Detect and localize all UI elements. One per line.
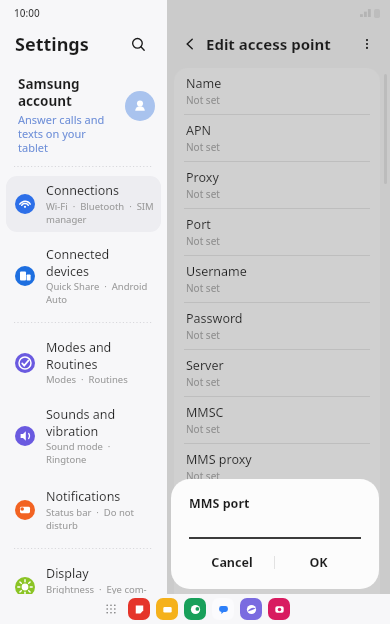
- staticText: Not set: [186, 375, 220, 389]
- button[interactable]: MMS proxy: [174, 444, 380, 490]
- button[interactable]: Cancel: [189, 548, 274, 577]
- staticText: Server: [186, 357, 224, 374]
- button[interactable]: Display: [6, 559, 161, 615]
- staticText: Sounds and vibration: [46, 406, 116, 439]
- staticText: Not set: [186, 93, 220, 107]
- button[interactable]: Server: [174, 350, 380, 396]
- button[interactable]: Username: [174, 256, 380, 302]
- button[interactable]: OK: [275, 548, 361, 577]
- button[interactable]: Proxy: [174, 162, 380, 208]
- staticText: MMSC: [186, 404, 224, 421]
- staticText: Username: [186, 263, 247, 280]
- button[interactable]: Camera: [268, 598, 290, 620]
- button[interactable]: Notifications: [6, 482, 161, 538]
- staticText: 10:00: [14, 6, 40, 20]
- staticText: MMS proxy: [186, 451, 252, 468]
- staticText: Not set: [186, 234, 220, 248]
- button[interactable]: MMSC: [174, 397, 380, 443]
- staticText: Proxy: [186, 169, 219, 186]
- button[interactable]: Phone: [184, 598, 206, 620]
- staticText: Samsung account: [18, 75, 80, 110]
- staticText: Settings: [15, 32, 89, 57]
- button[interactable]: MMS port: [174, 491, 380, 537]
- staticText: Answer calls and texts on your tablet: [18, 112, 105, 155]
- staticText: Not set: [186, 328, 220, 342]
- staticText: Modes and Routines: [46, 339, 112, 372]
- staticText: Modes · Routines: [46, 373, 128, 386]
- staticText: Port: [186, 216, 211, 233]
- button[interactable]: Samsung account: [0, 75, 167, 155]
- button[interactable]: Files: [156, 598, 178, 620]
- button[interactable]: Apps: [100, 598, 122, 620]
- staticText: Not set: [186, 469, 220, 483]
- staticText: Not set: [186, 281, 220, 295]
- staticText: Status bar · Do not disturb: [46, 506, 135, 532]
- staticText: Not set: [186, 140, 220, 154]
- staticText: Password: [186, 310, 243, 327]
- button[interactable]: APN: [174, 115, 380, 161]
- staticText: APN: [186, 122, 212, 139]
- staticText: Edit access point: [206, 34, 331, 54]
- button[interactable]: Messages: [212, 598, 234, 620]
- staticText: Notifications: [46, 488, 121, 505]
- button[interactable]: Internet: [240, 598, 262, 620]
- button[interactable]: Modes and Routines: [6, 333, 161, 392]
- staticText: Name: [186, 75, 222, 92]
- staticText: Quick Share · Android Auto: [46, 280, 148, 306]
- staticText: Brightness · Eye com- fort shield · Navi…: [46, 583, 153, 609]
- button[interactable]: Port: [174, 209, 380, 255]
- staticText: Cancel: [211, 554, 253, 571]
- staticText: Connected devices: [46, 246, 155, 279]
- staticText: OK: [309, 554, 328, 571]
- button[interactable]: Back: [177, 31, 203, 57]
- button[interactable]: More options: [354, 31, 380, 57]
- button[interactable]: Connected devices: [6, 240, 161, 312]
- staticText: Wi-Fi · Bluetooth · SIM manager: [46, 200, 154, 226]
- button[interactable]: Name: [174, 68, 380, 114]
- staticText: Sound mode · Ringtone: [46, 440, 155, 466]
- staticText: Not set: [186, 422, 220, 436]
- button[interactable]: Notes: [128, 598, 150, 620]
- staticText: MMS port: [189, 495, 250, 512]
- staticText: Not set: [186, 187, 220, 201]
- button[interactable]: Sounds and vibration: [6, 400, 161, 472]
- staticText: MMS port: [186, 498, 244, 515]
- button[interactable]: Connections: [6, 176, 161, 232]
- staticText: Connections: [46, 182, 119, 199]
- button[interactable]: Search: [124, 30, 152, 58]
- button[interactable]: Password: [174, 303, 380, 349]
- staticText: Display: [46, 565, 89, 582]
